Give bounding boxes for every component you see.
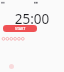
other: Session progress xyxy=(0,34,40,44)
staticText: 25:00 xyxy=(0,10,64,28)
button[interactable]: START xyxy=(3,25,37,32)
staticText: START xyxy=(15,26,26,31)
button[interactable]: Sessions xyxy=(9,64,14,69)
